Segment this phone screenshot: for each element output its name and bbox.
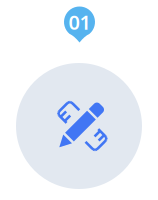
staticText: 01 xyxy=(68,9,90,35)
